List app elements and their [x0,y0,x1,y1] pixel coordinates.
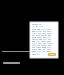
button[interactable]: Primary action [48,53,56,56]
button[interactable]: Status bar item [3,62,20,64]
button[interactable]: Primary action [30,22,58,58]
